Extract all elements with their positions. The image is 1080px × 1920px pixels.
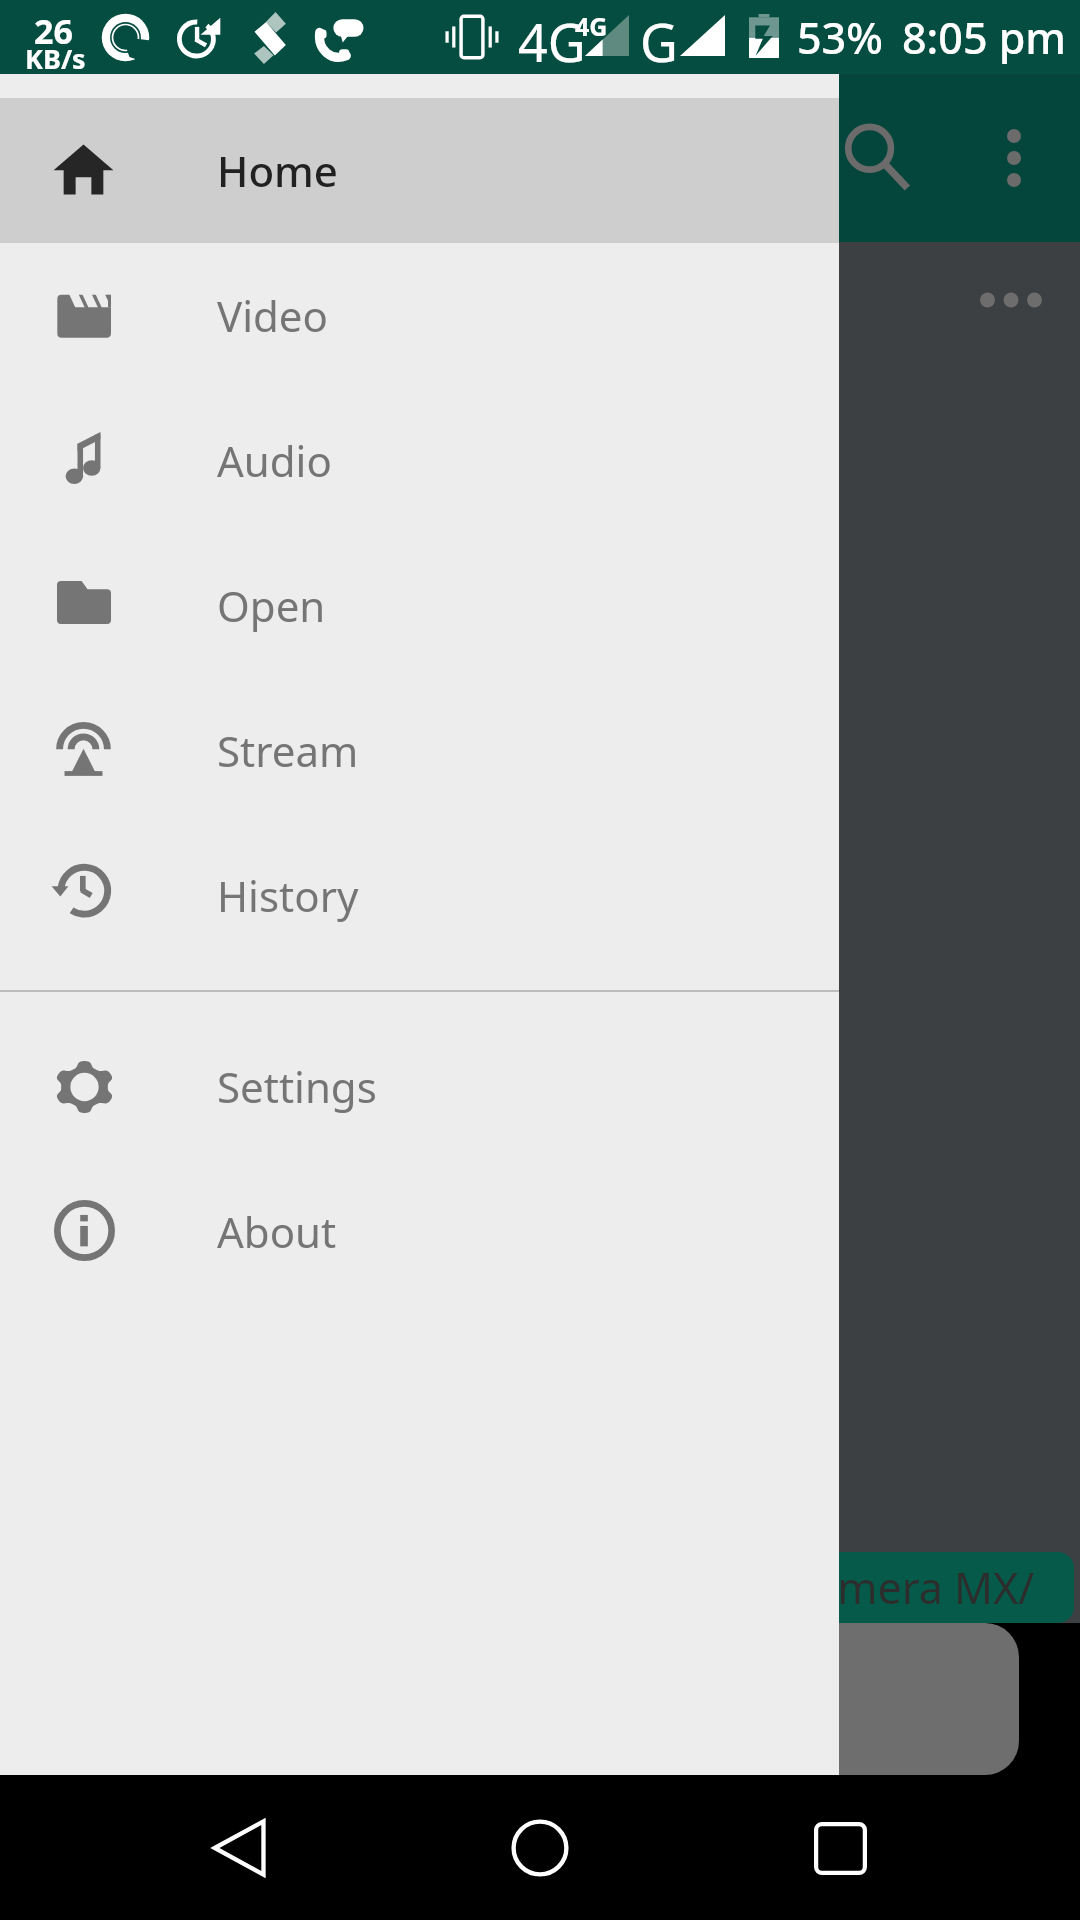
button[interactable]: About — [0, 1159, 839, 1304]
button[interactable]: More options — [959, 103, 1069, 213]
staticText: KB/s — [25, 40, 86, 77]
button[interactable]: Back — [180, 1788, 300, 1908]
button[interactable]: Settings — [0, 1014, 839, 1159]
button[interactable] — [0, 1623, 1019, 1775]
staticText: Video — [217, 287, 328, 344]
button[interactable]: Search — [823, 103, 933, 213]
staticText: 4G — [575, 9, 608, 43]
button[interactable]: Home — [0, 98, 839, 243]
button[interactable]: History — [0, 823, 839, 968]
button[interactable]: Recent apps — [780, 1788, 900, 1908]
button[interactable]: Open — [0, 533, 839, 678]
staticText: Stream — [217, 722, 359, 779]
staticText: History — [217, 867, 359, 924]
staticText: 53% — [797, 8, 883, 67]
button[interactable]: Home — [480, 1788, 600, 1908]
staticText: Open — [217, 577, 326, 634]
button[interactable]: Stream — [0, 678, 839, 823]
staticText: G — [640, 6, 678, 77]
staticText: Home — [217, 142, 338, 199]
staticText: Settings — [217, 1058, 377, 1115]
staticText: 8:05 pm — [902, 8, 1067, 67]
staticText: /storage/emulated/0/DCIM/Camera MX/ — [223, 1558, 1035, 1617]
button[interactable]: /storage/emulated/0/DCIM/Camera MX/ — [0, 1552, 1074, 1623]
staticText: 4G — [518, 6, 586, 77]
staticText: About — [217, 1203, 337, 1260]
staticText: 26 — [34, 8, 73, 54]
button[interactable]: Audio — [0, 388, 839, 533]
button[interactable]: Item options — [963, 268, 1059, 332]
button[interactable]: Video — [0, 243, 839, 388]
staticText: Audio — [217, 432, 332, 489]
